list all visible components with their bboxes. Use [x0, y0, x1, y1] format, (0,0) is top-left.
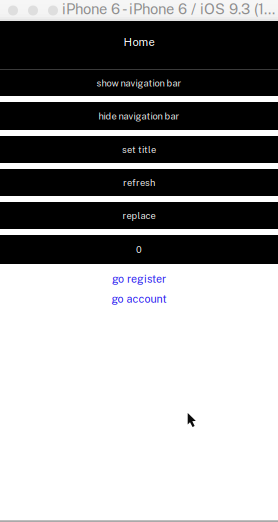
staticText: replace: [122, 210, 155, 221]
button[interactable]: show navigation bar: [0, 70, 278, 96]
button[interactable]: replace: [0, 202, 278, 229]
button[interactable]: hide navigation bar: [0, 102, 278, 130]
button[interactable]: 0: [0, 235, 278, 264]
staticText: show navigation bar: [96, 77, 181, 88]
staticText: go register: [112, 273, 166, 285]
button[interactable]: set title: [0, 136, 278, 163]
staticText: refresh: [123, 177, 155, 188]
staticText: Home: [123, 35, 154, 49]
button[interactable]: go account: [0, 289, 278, 309]
staticText: set title: [122, 144, 156, 155]
staticText: iPhone 6 - iPhone 6 / iOS 9.3 (1…: [62, 0, 275, 18]
button[interactable]: refresh: [0, 169, 278, 196]
button[interactable]: go register: [0, 269, 278, 289]
staticText: hide navigation bar: [98, 110, 179, 121]
staticText: go account: [111, 293, 166, 305]
staticText: 0: [136, 244, 142, 255]
